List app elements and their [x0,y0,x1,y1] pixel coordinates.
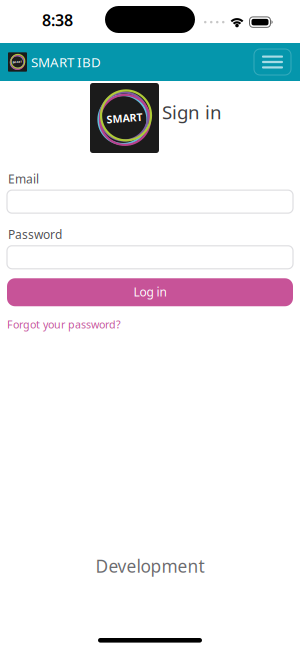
button[interactable]: Forgot your password? [7,317,121,331]
staticText: Password [8,226,62,242]
staticText: SMART [106,111,142,125]
staticText: Email [8,171,39,187]
staticText: Development [95,554,204,577]
staticText: Sign in [162,100,222,124]
staticText: Forgot your password? [7,317,121,331]
button[interactable]: Log in [7,278,293,306]
staticText: Log in [133,284,166,300]
button[interactable]: Menu [254,49,291,75]
staticText: SMART IBD [31,53,101,71]
staticText: 8:38 [42,9,73,31]
staticText: SMART [12,60,22,64]
